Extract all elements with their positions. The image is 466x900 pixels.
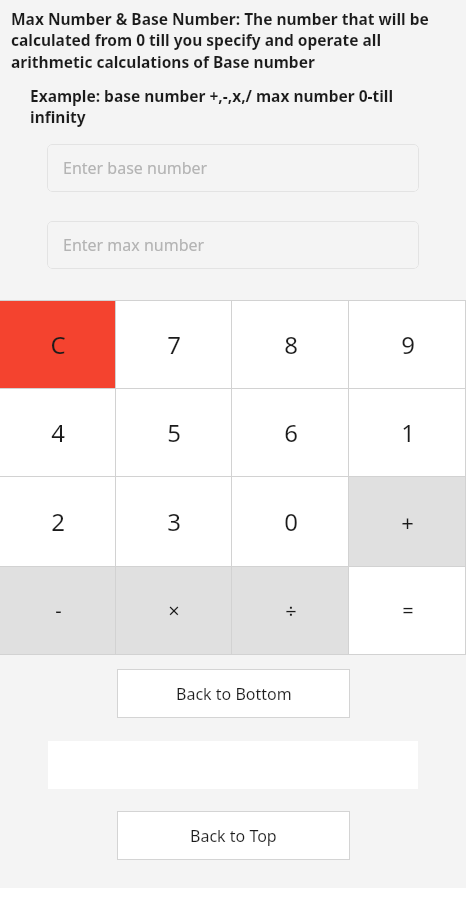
staticText: + <box>401 507 414 537</box>
button[interactable]: Enter max number <box>47 221 419 269</box>
button[interactable]: 3 <box>116 477 232 566</box>
staticText: 6 <box>284 416 298 449</box>
staticText: 3 <box>167 505 181 538</box>
button[interactable]: 6 <box>232 389 349 476</box>
button[interactable]: 0 <box>232 477 349 566</box>
button[interactable]: 1 <box>349 389 466 476</box>
staticText: × <box>168 597 180 624</box>
staticText: Back to Bottom <box>176 683 292 705</box>
button[interactable]: 5 <box>116 389 232 476</box>
button[interactable]: - <box>0 567 116 654</box>
staticText: Enter max number <box>63 234 205 256</box>
button[interactable]: 9 <box>349 301 466 388</box>
staticText: 2 <box>51 505 65 538</box>
staticText: C <box>50 328 66 361</box>
staticText: 7 <box>167 328 181 361</box>
button[interactable]: 4 <box>0 389 116 476</box>
staticText: 4 <box>51 416 65 449</box>
button[interactable]: C <box>0 301 116 388</box>
button[interactable]: 8 <box>232 301 349 388</box>
button[interactable]: 7 <box>116 301 232 388</box>
staticText: Back to Top <box>190 825 277 847</box>
staticText: 9 <box>401 328 415 361</box>
button[interactable]: ÷ <box>232 567 349 654</box>
staticText: Max Number & Base Number: The number tha… <box>11 8 456 73</box>
staticText: = <box>402 597 414 624</box>
staticText: 1 <box>401 416 415 449</box>
staticText: Example: base number +,-,x,/ max number … <box>30 85 436 128</box>
button[interactable]: Enter base number <box>47 144 419 192</box>
button[interactable]: Back to Bottom <box>117 669 350 718</box>
button[interactable]: Back to Top <box>117 811 350 860</box>
staticText: ÷ <box>285 597 297 624</box>
button[interactable]: 2 <box>0 477 116 566</box>
staticText: 5 <box>167 416 181 449</box>
button[interactable]: = <box>349 567 466 654</box>
staticText: - <box>55 597 62 624</box>
button[interactable]: × <box>116 567 232 654</box>
staticText: 8 <box>284 328 298 361</box>
staticText: Enter base number <box>63 157 208 179</box>
button[interactable]: + <box>349 477 466 566</box>
staticText: 0 <box>284 505 298 538</box>
